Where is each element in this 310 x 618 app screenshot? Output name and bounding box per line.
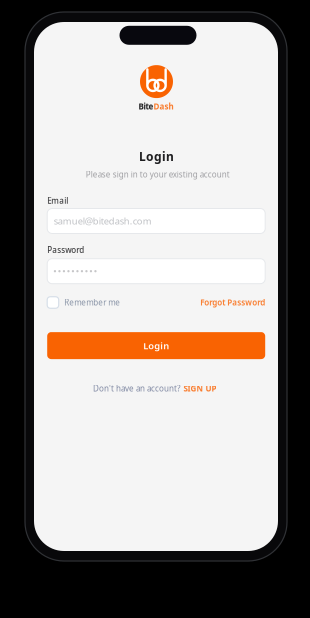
- button[interactable]: Don't have an account?: [93, 383, 216, 394]
- staticText: Login: [143, 339, 169, 352]
- staticText: Password: [47, 245, 84, 255]
- staticText: Dash: [154, 101, 174, 112]
- staticText: Don't have an account?: [93, 383, 180, 394]
- staticText: Remember me: [64, 297, 120, 308]
- button[interactable]: Login: [47, 332, 265, 359]
- staticText: samuel@bitedash.com: [54, 215, 152, 227]
- staticText: SIGN UP: [183, 383, 216, 394]
- staticText: Please sign in to your existing account: [86, 169, 230, 180]
- staticText: Login: [139, 148, 174, 164]
- staticText: Email: [47, 195, 68, 206]
- staticText: Bite: [139, 101, 154, 112]
- button[interactable]: Forgot Password: [200, 297, 265, 308]
- staticText: Forgot Password: [200, 297, 265, 308]
- button[interactable]: Remember me: [47, 297, 120, 308]
